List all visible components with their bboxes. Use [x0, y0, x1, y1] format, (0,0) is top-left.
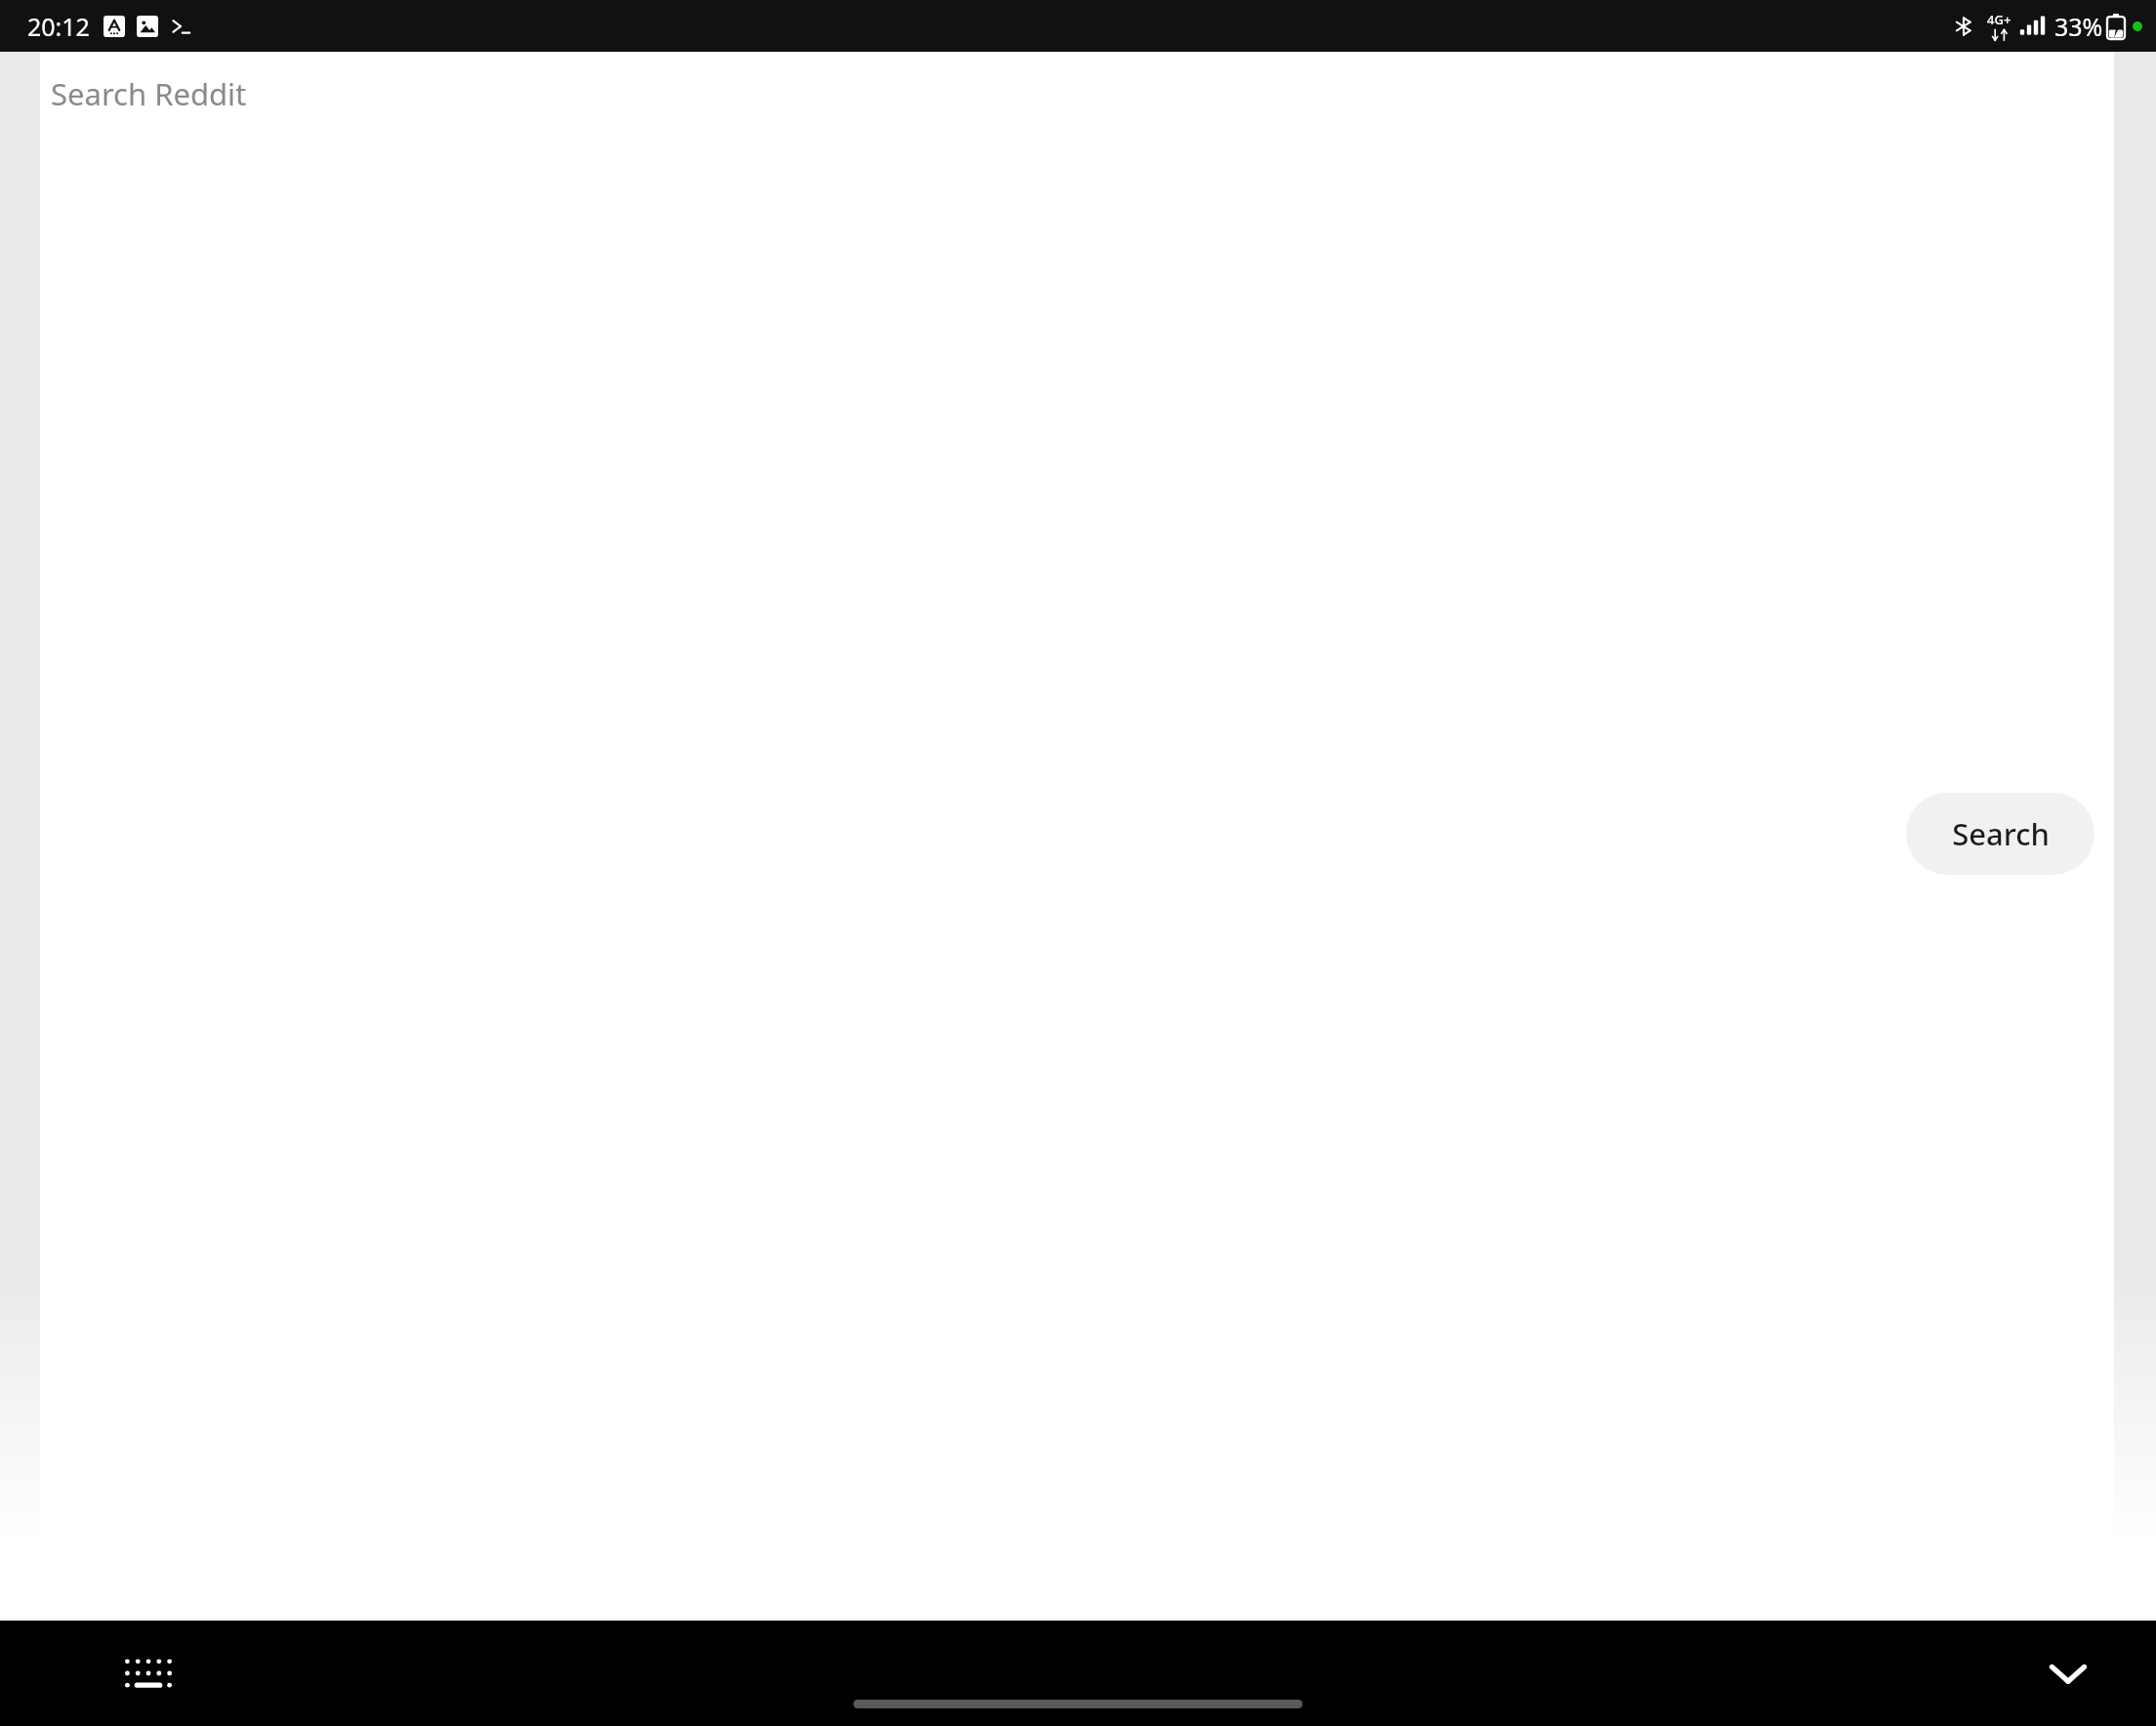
staticText: 33% [2054, 10, 2103, 43]
button[interactable]: Search Reddit [40, 52, 1309, 136]
button[interactable]: Search [1906, 793, 2094, 875]
staticText: Search Reddit [51, 73, 247, 114]
button[interactable]: Hide keyboard [2023, 1628, 2113, 1718]
staticText: 4G+ [1987, 11, 2011, 28]
staticText: Search [1952, 813, 2050, 854]
button[interactable]: Switch keyboard [104, 1628, 193, 1718]
staticText: 20:12 [27, 10, 90, 43]
